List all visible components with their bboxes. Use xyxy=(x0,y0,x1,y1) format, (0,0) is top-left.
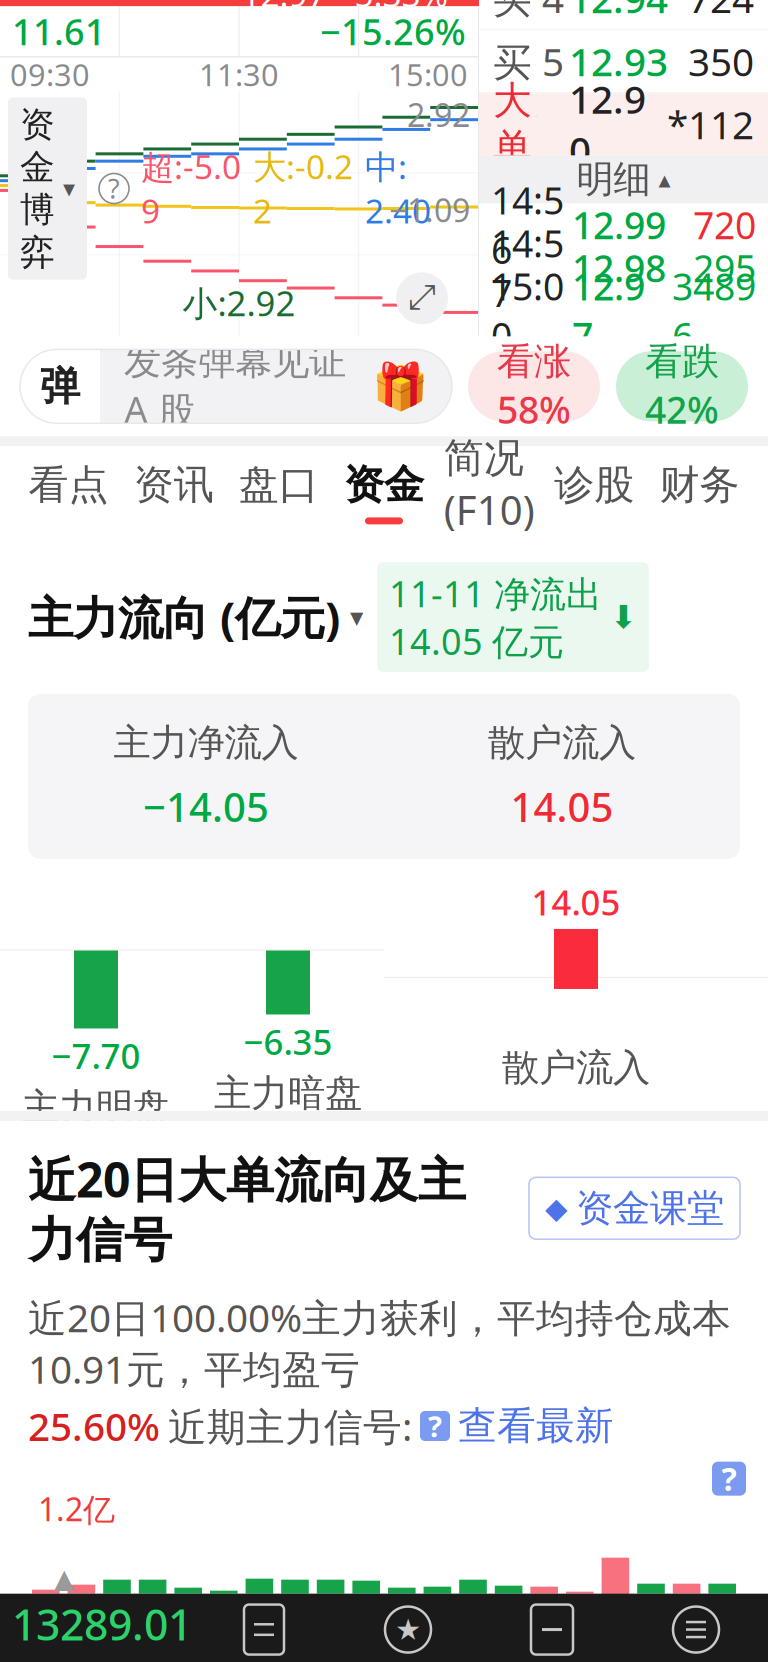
button[interactable]: 查看最新 xyxy=(458,1402,614,1450)
staticText: ? xyxy=(428,1406,442,1445)
staticText: ? xyxy=(721,1457,736,1500)
staticText: −1.09 xyxy=(389,188,470,231)
staticText: 财务 xyxy=(659,460,739,509)
staticText: 主力净流入 xyxy=(113,720,298,766)
button[interactable]: 财务 xyxy=(647,446,752,538)
staticText: 买 4 xyxy=(493,0,564,24)
staticText: 11.61 xyxy=(12,7,106,55)
staticText: 15:00 xyxy=(491,261,564,360)
staticText: 资金博弈 xyxy=(20,103,55,274)
staticText: 看涨58% xyxy=(497,339,571,434)
staticText: 12.90 xyxy=(569,73,646,176)
staticText: 350 xyxy=(688,36,754,87)
staticText: 中:2.40 xyxy=(365,144,431,233)
staticText: ⬇ xyxy=(610,599,637,635)
button[interactable]: 资金博弈 xyxy=(8,97,87,280)
staticText: 发条弹幕见证 A 股 xyxy=(124,338,346,434)
button[interactable]: 弹 xyxy=(20,349,452,423)
staticText: ⤢ xyxy=(408,281,436,315)
staticText: ★ xyxy=(395,1613,421,1646)
staticText: 25.60% xyxy=(28,1400,160,1452)
staticText: 14:56 xyxy=(491,175,564,274)
staticText: 724 xyxy=(688,0,754,24)
button[interactable]: 资讯 xyxy=(121,446,226,538)
staticText: 15:07 xyxy=(491,329,585,379)
button[interactable]: Signal help xyxy=(420,1411,450,1441)
staticText: 简况(F10) xyxy=(444,434,535,536)
staticText: 资讯 xyxy=(134,460,214,509)
button[interactable]: 主力流向 (亿元) xyxy=(28,587,363,647)
button[interactable]: Indicator help xyxy=(99,173,129,203)
button[interactable]: 看点 xyxy=(16,446,121,538)
staticText: 资金 xyxy=(344,460,424,509)
staticText: 09:30 xyxy=(10,54,90,95)
staticText: 主力暗盘 xyxy=(214,1070,362,1116)
staticText: 11-11 净流出 14.05 亿元 xyxy=(389,569,602,665)
staticText: 散户流入 xyxy=(488,720,636,766)
button[interactable]: 明细 xyxy=(479,155,768,203)
staticText: 15:00 xyxy=(388,54,468,95)
staticText: 12.97 xyxy=(572,261,645,360)
staticText: 超:-5.09 xyxy=(141,144,241,233)
staticText: 明细 xyxy=(576,156,650,202)
staticText: 查看最新 xyxy=(458,1402,614,1450)
staticText: 资金课堂 xyxy=(576,1185,724,1231)
staticText: 12.93 xyxy=(569,36,668,87)
staticText: 主力明盘 xyxy=(22,1084,170,1130)
staticText: ◆ xyxy=(545,1192,568,1225)
staticText: −14.05 xyxy=(143,780,269,833)
button[interactable]: 看跌42% xyxy=(616,351,748,421)
button[interactable]: 看涨58% xyxy=(468,351,600,421)
staticText: 近20日大单流向及主力信号 xyxy=(28,1147,466,1270)
staticText: 小:2.92 xyxy=(182,280,295,326)
button[interactable]: 资金 xyxy=(331,446,436,538)
staticText: 30 xyxy=(714,329,756,379)
staticText: 散户流入 xyxy=(502,1045,650,1091)
staticText: 买 5 xyxy=(493,36,564,87)
staticText: ‹ xyxy=(38,0,58,17)
staticText: 12.97 −5.33% xyxy=(241,0,448,16)
button[interactable]: ★ xyxy=(336,1594,480,1662)
staticText: −7.70 xyxy=(51,1032,140,1078)
button[interactable]: Expand chart xyxy=(396,272,448,324)
staticText: 14:57 xyxy=(491,218,564,317)
staticText: 13289.01 xyxy=(12,1596,192,1652)
button[interactable]: 功能 xyxy=(624,1594,768,1662)
staticText: 大单 xyxy=(493,77,532,172)
staticText: 看点 xyxy=(29,460,109,509)
button[interactable]: 盘口 xyxy=(226,446,331,538)
staticText: 11:30 xyxy=(199,54,279,95)
staticText: 1.2亿 xyxy=(38,1488,115,1530)
staticText: ▾ xyxy=(350,602,363,632)
staticText: ▴ xyxy=(658,166,670,193)
staticText: 看跌42% xyxy=(645,339,719,434)
button[interactable]: 11-11 净流出 14.05 亿元 xyxy=(377,562,649,672)
button[interactable]: ◆ xyxy=(529,1177,740,1239)
staticText: 主力流向 (亿元) xyxy=(28,587,340,647)
staticText: −6.35 xyxy=(243,1018,332,1064)
staticText: 12.94 xyxy=(569,0,668,24)
staticText: 诊股 xyxy=(554,460,634,509)
staticText: 720 xyxy=(693,200,756,250)
staticText: 12.99 xyxy=(572,200,666,250)
staticText: 14.05 xyxy=(531,879,620,925)
staticText: 34896 xyxy=(672,261,756,360)
staticText: 弹 xyxy=(40,362,80,411)
staticText: −15.26% xyxy=(320,7,466,55)
staticText: 近20日100.00%主力获利，平均持仓成本10.91元，平均盈亏 xyxy=(28,1292,731,1394)
staticText: 295 xyxy=(693,243,756,293)
staticText: ▲ xyxy=(54,1563,75,1594)
button[interactable]: 诊股 xyxy=(542,446,647,538)
button[interactable]: Chart help xyxy=(712,1462,746,1496)
button[interactable]: ▲ xyxy=(0,1594,192,1662)
staticText: 近期主力信号: xyxy=(168,1400,412,1452)
staticText: 2.92 xyxy=(407,93,470,136)
staticText: 14.05 xyxy=(510,780,613,833)
staticText: 🎁 xyxy=(372,360,428,412)
button[interactable]: 简况(F10) xyxy=(437,446,542,538)
button[interactable]: 下单 xyxy=(192,1594,336,1662)
staticText: 大:-0.22 xyxy=(253,144,353,233)
button[interactable]: 删自选 xyxy=(480,1594,624,1662)
